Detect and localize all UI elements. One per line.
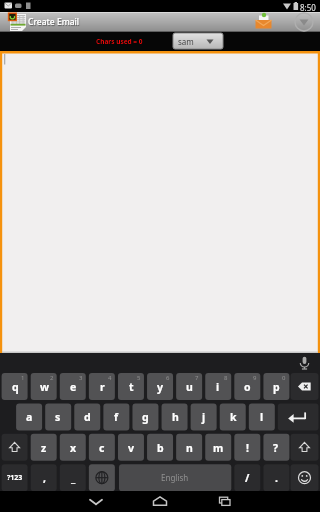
staticText: 0 (282, 374, 286, 382)
staticText: m (213, 441, 224, 455)
staticText: 1 (21, 374, 25, 382)
staticText: , (43, 471, 46, 485)
staticText: 7 (195, 374, 199, 382)
staticText: u (186, 380, 193, 394)
staticText: b (157, 441, 164, 455)
staticText: e (70, 380, 77, 394)
staticText: _ (71, 471, 76, 485)
staticText: Create Email (28, 16, 80, 28)
staticText: p (273, 380, 280, 394)
staticText: y (157, 380, 163, 394)
staticText: l (260, 410, 264, 424)
staticText: t (129, 380, 134, 394)
staticText: f (114, 410, 119, 424)
staticText: w (40, 380, 49, 394)
staticText: h (172, 410, 179, 424)
staticText: g (142, 410, 149, 424)
staticText: ? (273, 441, 279, 455)
staticText: 9 (253, 374, 257, 382)
staticText: ?123 (7, 473, 23, 483)
staticText: i (216, 380, 220, 394)
staticText: 8:50 (300, 2, 316, 12)
staticText: v (128, 441, 134, 455)
staticText: 6 (166, 374, 170, 382)
staticText: ! (246, 441, 249, 455)
staticText: q (12, 380, 19, 394)
staticText: x (70, 441, 77, 455)
staticText: 2 (50, 374, 54, 382)
staticText: 5 (137, 374, 141, 382)
staticText: sam (178, 36, 194, 47)
staticText: n (186, 441, 193, 455)
staticText: 4 (108, 374, 112, 382)
staticText: r (100, 380, 105, 394)
staticText: 3 (79, 374, 83, 382)
staticText: Chars used = 0 (96, 37, 143, 46)
staticText: 8 (224, 374, 228, 382)
staticText: English (161, 472, 189, 483)
staticText: d (84, 410, 91, 424)
staticText: z (41, 441, 47, 455)
staticText: c (99, 441, 105, 455)
staticText: a (26, 410, 33, 424)
staticText: . (275, 471, 278, 485)
staticText: k (230, 410, 237, 424)
staticText: j (202, 410, 206, 424)
staticText: / (245, 471, 250, 485)
staticText: s (55, 410, 61, 424)
staticText: o (244, 380, 251, 394)
